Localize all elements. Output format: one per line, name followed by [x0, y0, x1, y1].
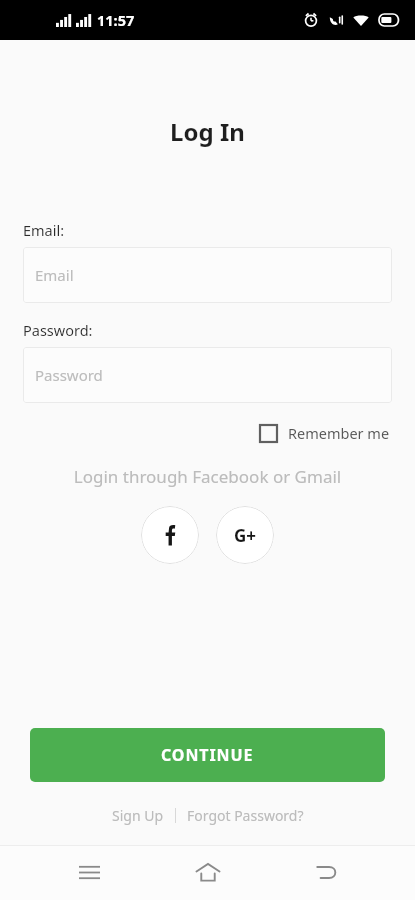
- button[interactable]: Back: [297, 845, 355, 900]
- staticText: G+: [234, 524, 257, 547]
- staticText: Email: [35, 265, 74, 285]
- button[interactable]: Forgot Password?: [183, 806, 308, 825]
- button[interactable]: Password: [23, 347, 392, 403]
- staticText: Email:: [23, 220, 65, 240]
- staticText: Password:: [23, 320, 93, 340]
- staticText: Remember me: [288, 423, 390, 443]
- button[interactable]: Recent apps: [60, 845, 118, 900]
- button[interactable]: Sign in with Google Plus: [216, 506, 274, 564]
- staticText: 11:57: [97, 10, 135, 30]
- button[interactable]: CONTINUE: [30, 728, 385, 782]
- button[interactable]: Sign in with Facebook: [141, 506, 199, 564]
- staticText: Log In: [0, 115, 415, 148]
- button[interactable]: Sign Up: [108, 806, 168, 825]
- staticText: Login through Facebook or Gmail: [0, 465, 415, 488]
- staticText: Password: [35, 365, 103, 385]
- staticText: CONTINUE: [161, 744, 254, 766]
- button[interactable]: Remember me: [257, 419, 392, 447]
- button[interactable]: Email: [23, 247, 392, 303]
- button[interactable]: Home: [179, 845, 237, 900]
